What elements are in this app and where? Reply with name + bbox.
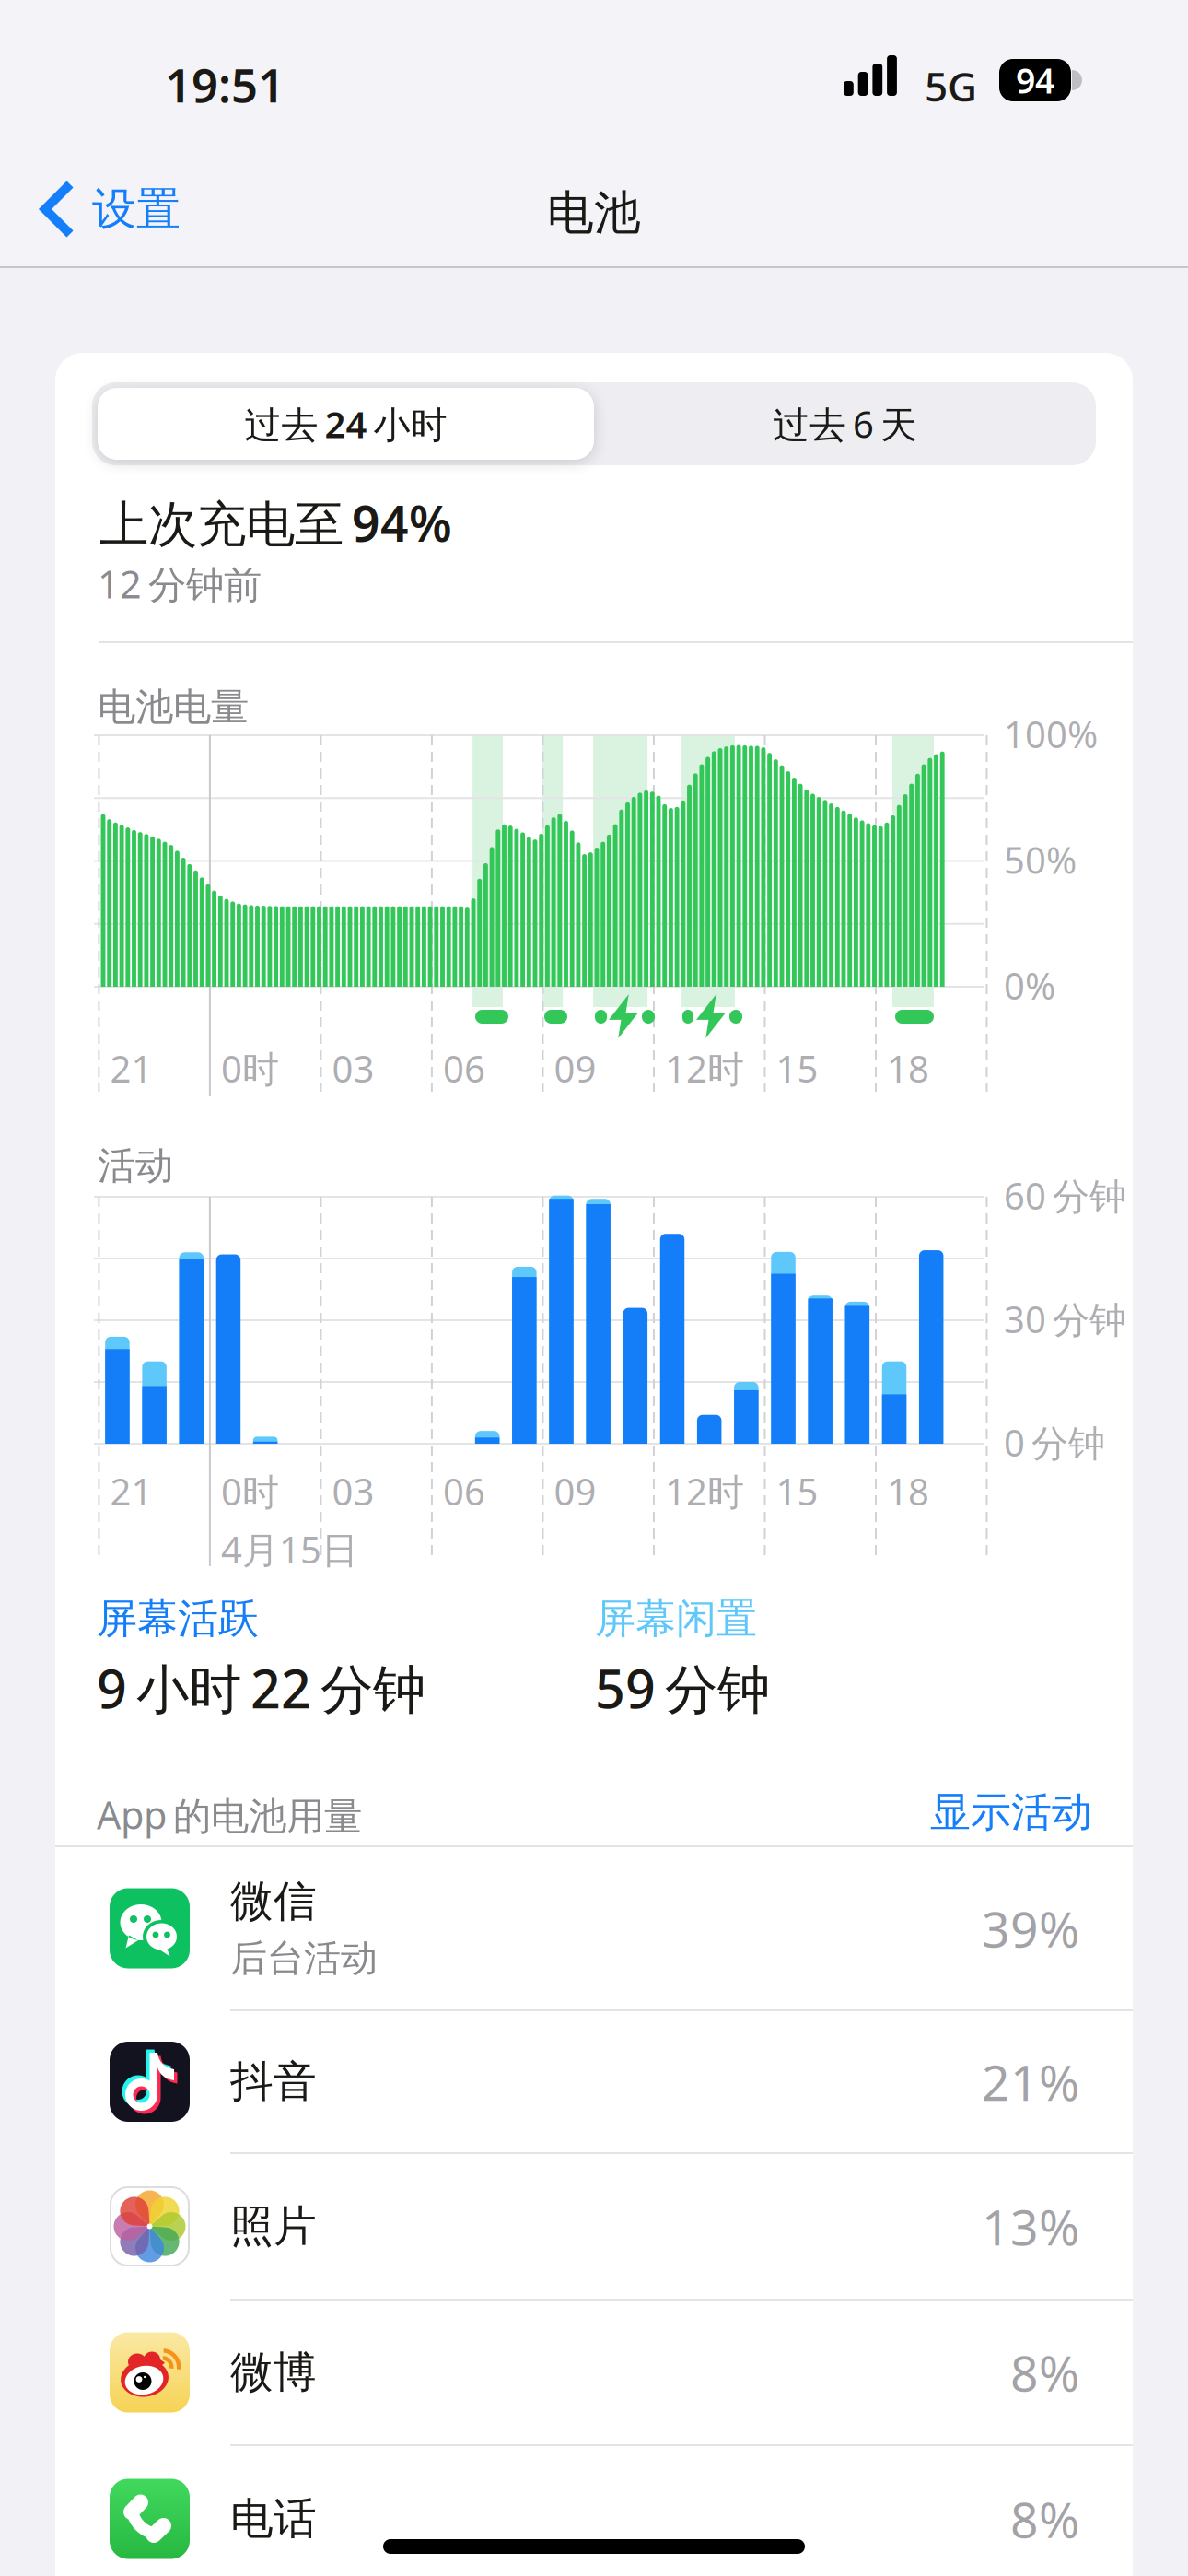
staticText: 电池: [547, 184, 641, 242]
button[interactable]: 过去 24 小时: [95, 382, 597, 465]
staticText: 06: [443, 1044, 485, 1093]
staticText: 0时: [221, 1044, 279, 1093]
staticText: 8%: [1010, 2486, 1079, 2551]
staticText: 06: [443, 1467, 485, 1516]
staticText: 抖音: [230, 2055, 317, 2108]
staticText: 19:51: [165, 53, 285, 115]
staticText: 设置: [92, 182, 181, 236]
staticText: 09: [554, 1467, 596, 1516]
staticText: 过去 6 天: [773, 399, 917, 448]
staticText: 18: [887, 1467, 929, 1516]
staticText: 21%: [982, 2049, 1079, 2114]
button[interactable]: 设置: [39, 181, 181, 238]
button[interactable]: 过去 6 天: [594, 382, 1096, 465]
staticText: 5G: [925, 59, 977, 113]
staticText: 4月15日: [221, 1525, 358, 1574]
staticText: 15: [776, 1467, 818, 1516]
button[interactable]: 电话: [55, 2446, 1133, 2576]
staticText: 9 小时 22 分钟: [97, 1653, 425, 1723]
staticText: 94: [1016, 57, 1054, 103]
staticText: 18: [887, 1044, 929, 1093]
button[interactable]: 微信: [55, 1847, 1133, 2009]
staticText: App 的电池用量: [97, 1789, 362, 1840]
staticText: 03: [332, 1044, 374, 1093]
staticText: 过去 24 小时: [245, 399, 447, 448]
staticText: 电池电量: [98, 684, 249, 730]
staticText: 微信: [230, 1875, 317, 1928]
staticText: 100%: [1004, 709, 1098, 758]
staticText: 12时: [665, 1044, 744, 1093]
staticText: 0 分钟: [1004, 1418, 1105, 1467]
staticText: 03: [332, 1467, 374, 1516]
staticText: 电话: [230, 2492, 317, 2545]
staticText: 屏幕活跃: [97, 1594, 259, 1644]
staticText: 0%: [1004, 961, 1055, 1010]
button[interactable]: 微博: [55, 2301, 1133, 2444]
staticText: 13%: [982, 2194, 1079, 2259]
staticText: 8%: [1010, 2340, 1079, 2405]
staticText: 60 分钟: [1004, 1171, 1126, 1220]
button[interactable]: 抖音: [55, 2011, 1133, 2152]
button[interactable]: 照片: [55, 2154, 1133, 2299]
staticText: 上次充电至 94%: [99, 490, 452, 555]
staticText: 后台活动: [230, 1936, 378, 1981]
staticText: 21: [110, 1044, 152, 1093]
staticText: 30 分钟: [1004, 1294, 1126, 1343]
staticText: 活动: [98, 1142, 173, 1189]
staticText: 39%: [982, 1896, 1079, 1961]
staticText: 21: [110, 1467, 152, 1516]
staticText: 屏幕闲置: [595, 1594, 757, 1644]
button[interactable]: 显示活动: [930, 1787, 1092, 1837]
staticText: 12时: [665, 1467, 744, 1516]
staticText: 0时: [221, 1467, 279, 1516]
staticText: 15: [776, 1044, 818, 1093]
staticText: 照片: [230, 2200, 317, 2253]
staticText: 09: [554, 1044, 596, 1093]
staticText: 显示活动: [930, 1787, 1092, 1837]
staticText: 59 分钟: [595, 1653, 770, 1723]
staticText: 12 分钟前: [98, 558, 262, 609]
staticText: 微博: [230, 2346, 317, 2399]
staticText: 50%: [1004, 835, 1077, 884]
